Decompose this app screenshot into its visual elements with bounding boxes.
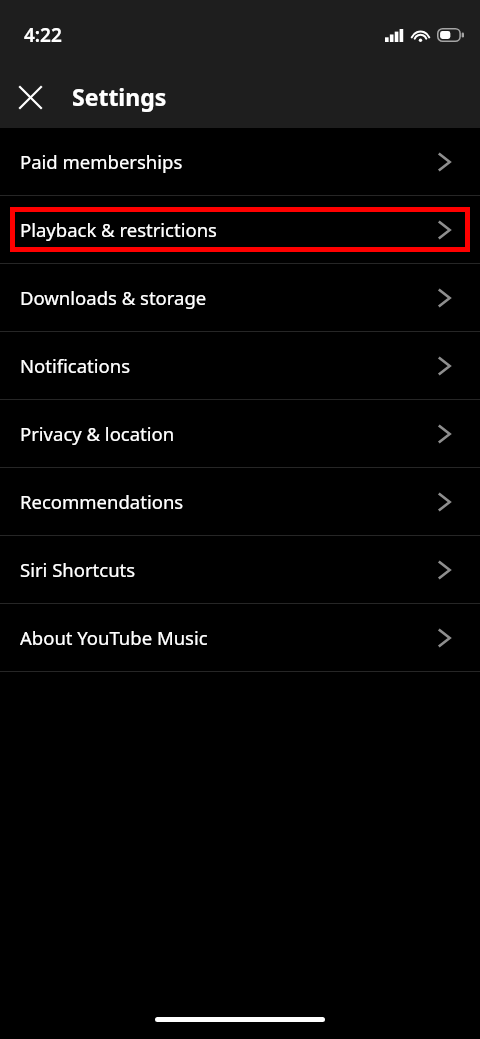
staticText: 4:22	[24, 22, 62, 48]
staticText: Privacy & location	[20, 421, 438, 446]
button[interactable]: Siri Shortcuts	[0, 536, 480, 603]
staticText: Recommendations	[20, 489, 438, 514]
staticText: Siri Shortcuts	[20, 557, 438, 582]
button[interactable]: Privacy & location	[0, 400, 480, 467]
button[interactable]: Paid memberships	[0, 128, 480, 195]
staticText: Paid memberships	[20, 149, 438, 174]
button[interactable]: Recommendations	[0, 468, 480, 535]
button[interactable]: Playback & restrictions	[0, 196, 480, 263]
button[interactable]: Close	[8, 75, 52, 119]
staticText: Playback & restrictions	[20, 217, 438, 242]
staticText: Notifications	[20, 353, 438, 378]
button[interactable]: About YouTube Music	[0, 604, 480, 671]
staticText: About YouTube Music	[20, 625, 438, 650]
staticText: Settings	[72, 81, 167, 112]
button[interactable]: Downloads & storage	[0, 264, 480, 331]
button[interactable]: Notifications	[0, 332, 480, 399]
staticText: Downloads & storage	[20, 285, 438, 310]
